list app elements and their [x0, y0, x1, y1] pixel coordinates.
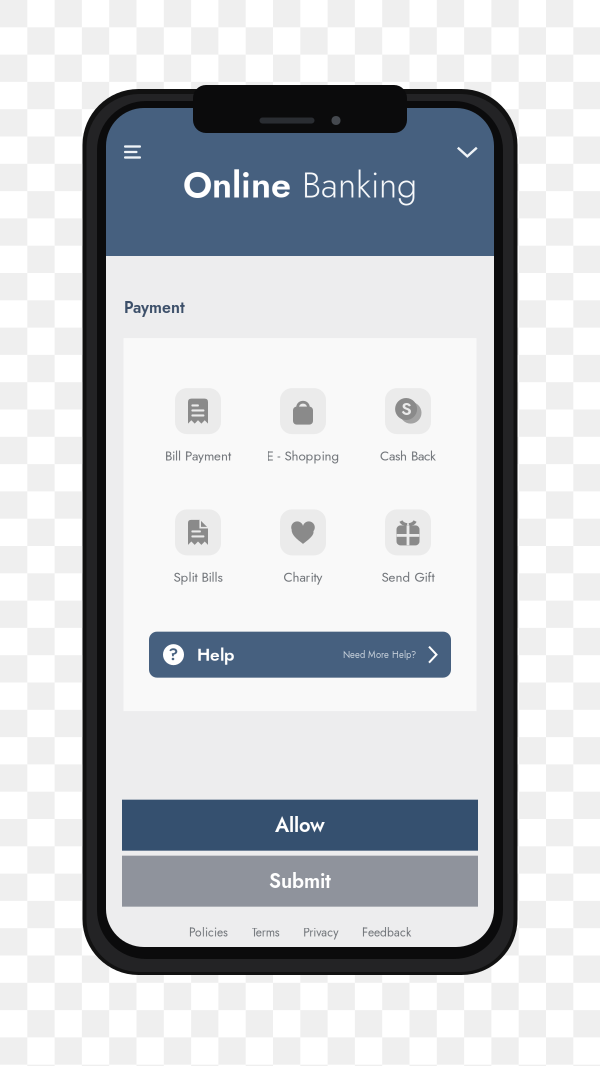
button[interactable]: Policies — [189, 924, 228, 941]
staticText: ? — [168, 643, 178, 666]
staticText: S — [401, 396, 411, 421]
button[interactable]: Bill Payment — [145, 388, 250, 465]
staticText: Feedback — [362, 924, 411, 941]
staticText: Cash Back — [380, 446, 436, 465]
button[interactable]: Charity — [250, 509, 355, 587]
button[interactable]: S — [355, 388, 460, 465]
button[interactable]: Send Gift — [355, 509, 460, 587]
button[interactable]: Privacy — [303, 924, 338, 941]
staticText: Payment — [124, 296, 185, 319]
button[interactable]: Allow — [122, 800, 478, 851]
button[interactable]: Feedback — [362, 924, 411, 941]
staticText: E - Shopping — [266, 446, 339, 465]
staticText: Privacy — [303, 924, 338, 941]
staticText: Allow — [275, 811, 325, 840]
staticText: Submit — [269, 867, 331, 896]
staticText: Send Gift — [381, 567, 434, 587]
staticText: Split Bills — [173, 567, 222, 587]
staticText: Online — [183, 159, 291, 211]
button[interactable]: Submit — [122, 856, 478, 907]
button[interactable]: Expand — [448, 138, 478, 166]
staticText: Charity — [283, 567, 322, 587]
staticText: Policies — [189, 924, 228, 941]
staticText: Help — [197, 642, 234, 667]
button[interactable]: Split Bills — [145, 509, 250, 587]
staticText: Terms — [252, 924, 280, 941]
button[interactable]: Menu — [124, 138, 154, 166]
staticText: Need More Help? — [343, 648, 416, 661]
button[interactable]: Terms — [252, 924, 280, 941]
button[interactable]: E - Shopping — [250, 388, 355, 465]
button[interactable]: ? — [149, 632, 451, 678]
staticText: Bill Payment — [165, 446, 231, 465]
staticText: Banking — [291, 159, 417, 211]
